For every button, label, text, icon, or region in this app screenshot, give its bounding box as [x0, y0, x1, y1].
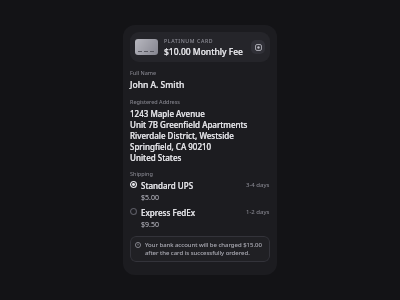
staticText: Full Name: [130, 69, 157, 76]
staticText: PLATINUM CARD: [164, 37, 214, 44]
staticText: 1243 Maple Avenue: [130, 108, 205, 119]
staticText: $5.00: [141, 193, 159, 203]
staticText: Registered Address: [130, 98, 180, 105]
staticText: Springfield, CA 90210: [130, 141, 212, 152]
staticText: Standard UPS: [141, 180, 194, 191]
button[interactable]: PLATINUM CARD: [130, 32, 270, 62]
staticText: Riverdale District, Westside: [130, 130, 234, 141]
staticText: $9.50: [141, 220, 159, 230]
button[interactable]: Express FedEx: [130, 207, 270, 230]
button[interactable]: Edit card: [251, 40, 265, 54]
staticText: 1-2 days: [246, 208, 270, 216]
button[interactable]: Standard UPS: [130, 180, 270, 203]
staticText: Shipping: [130, 170, 153, 177]
staticText: John A. Smith: [130, 79, 185, 91]
staticText: Express FedEx: [141, 207, 196, 218]
staticText: Unit 7B Greenfield Apartments: [130, 119, 248, 130]
staticText: $10.00 Monthly Fee: [164, 46, 243, 58]
staticText: Your bank account will be charged $15.00…: [145, 241, 265, 257]
staticText: 3-4 days: [246, 181, 270, 189]
staticText: United States: [130, 152, 182, 163]
